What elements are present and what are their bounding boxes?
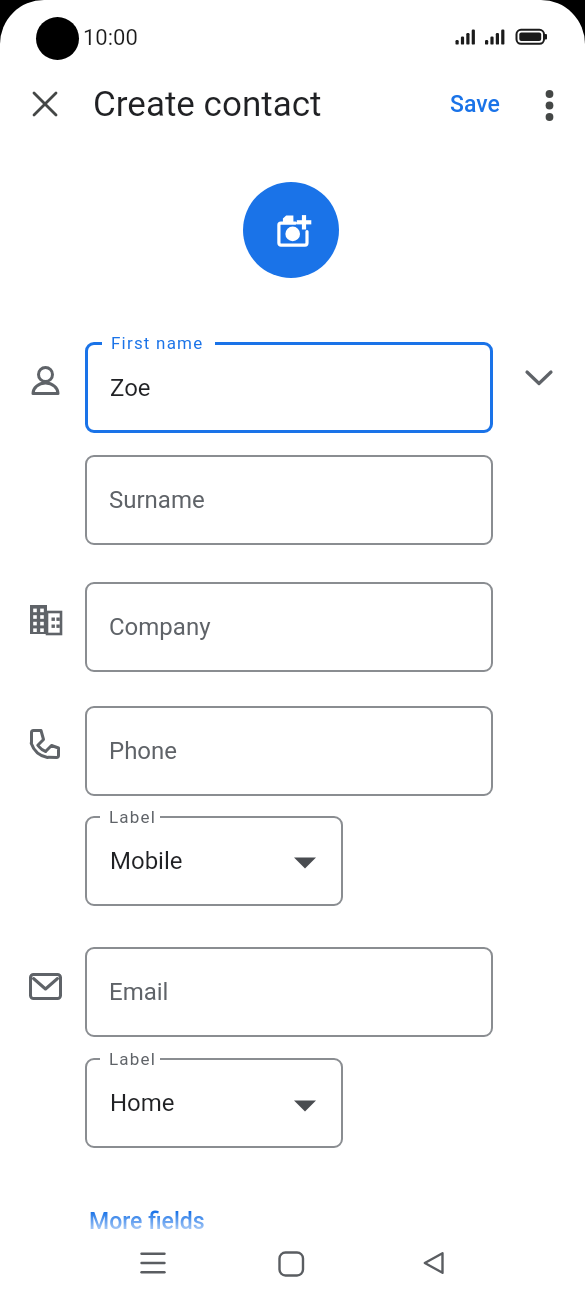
staticText: Company: [109, 613, 211, 641]
staticText: Home: [110, 1089, 175, 1117]
staticText: Label: [109, 807, 157, 827]
staticText: Surname: [109, 486, 205, 514]
button[interactable]: [26, 85, 64, 123]
button[interactable]: [535, 87, 565, 127]
button[interactable]: [85, 816, 343, 906]
button[interactable]: [85, 947, 493, 1037]
staticText: Zoe: [110, 374, 151, 402]
staticText: Phone: [109, 737, 178, 765]
button[interactable]: [85, 455, 493, 545]
button[interactable]: [243, 182, 339, 278]
button[interactable]: More fields: [85, 1200, 201, 1227]
button[interactable]: [267, 1240, 315, 1288]
button[interactable]: [85, 1058, 343, 1148]
staticText: Create contact: [93, 84, 322, 125]
button[interactable]: [129, 1240, 177, 1288]
staticText: First name: [111, 333, 204, 353]
staticText: Label: [109, 1049, 157, 1069]
staticText: Email: [109, 978, 169, 1006]
staticText: Save: [450, 91, 500, 118]
button[interactable]: Save: [440, 85, 490, 112]
button[interactable]: [85, 342, 493, 433]
button[interactable]: [85, 582, 493, 672]
staticText: 10:00: [83, 25, 138, 51]
button[interactable]: [411, 1240, 459, 1288]
staticText: More fields: [89, 1208, 205, 1235]
button[interactable]: [85, 706, 493, 796]
staticText: Mobile: [110, 847, 183, 875]
